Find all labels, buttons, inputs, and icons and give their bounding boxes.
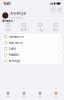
staticText: Rewards — [9, 53, 19, 56]
staticText: Transactions — [9, 35, 24, 38]
button[interactable]: Search — [52, 8, 55, 11]
button[interactable]: Cards — [16, 92, 32, 97]
staticText: Settings — [9, 59, 20, 63]
staticText: › — [59, 40, 60, 45]
button[interactable]: Stats — [32, 92, 48, 97]
button[interactable]: Pay — [32, 23, 48, 31]
button[interactable]: Cards — [2, 46, 62, 52]
staticText: More — [52, 28, 59, 31]
staticText: › — [59, 34, 60, 39]
staticText: Me — [55, 95, 57, 97]
button[interactable]: Send — [16, 23, 32, 31]
button[interactable]: Rewards — [2, 52, 62, 58]
staticText: Alex Morgan — [10, 12, 26, 15]
staticText: Premium — [10, 16, 22, 19]
button[interactable]: Settings — [2, 58, 62, 64]
staticText: Pay — [38, 28, 42, 31]
staticText: Services — [2, 19, 12, 23]
staticText: Cards — [21, 95, 26, 97]
staticText: Scan — [5, 28, 10, 31]
button[interactable]: Transactions — [2, 34, 62, 39]
staticText: Stats — [38, 95, 41, 97]
staticText: › — [59, 52, 60, 57]
button[interactable]: Notifications — [55, 8, 61, 11]
staticText: Statements — [9, 41, 23, 44]
staticText: Send — [20, 28, 27, 31]
staticText: › — [59, 46, 60, 51]
staticText: Cards — [9, 47, 16, 50]
button[interactable]: Home — [0, 92, 16, 97]
staticText: › — [59, 58, 60, 63]
staticText: 9:41 — [3, 1, 10, 6]
button[interactable]: Statements — [2, 40, 62, 46]
button[interactable]: More — [48, 23, 64, 31]
button[interactable]: Me — [48, 92, 64, 97]
button[interactable]: Scan — [0, 23, 16, 31]
staticText: Home — [6, 95, 10, 97]
